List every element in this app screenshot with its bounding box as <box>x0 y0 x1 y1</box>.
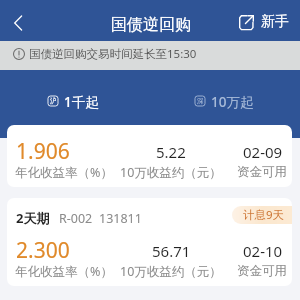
button[interactable]: Beginner guide <box>238 13 289 31</box>
staticText: 10万收益约（元） <box>120 263 220 280</box>
other: Beginner guide <box>238 14 255 31</box>
button[interactable]: 深 <box>195 92 254 110</box>
staticText: 新手 <box>261 13 289 31</box>
staticText: 资金可用 <box>237 263 287 279</box>
staticText: 5.22 <box>156 142 186 162</box>
staticText: 02-09 <box>243 142 283 162</box>
button[interactable]: 1.906 <box>7 125 292 187</box>
staticText: 10万起 <box>211 93 254 111</box>
staticText: 2.300 <box>16 236 70 265</box>
staticText: 年化收益率（%） <box>15 263 113 280</box>
staticText: 沪 <box>50 97 57 105</box>
staticText: 深 <box>197 97 204 105</box>
staticText: 02-10 <box>243 241 283 261</box>
staticText: 1千起 <box>64 93 99 111</box>
staticText: 2天期 <box>16 209 50 227</box>
staticText: 国债逆回购 <box>111 15 191 35</box>
staticText: 10万收益约（元） <box>120 164 220 181</box>
button[interactable]: 沪 <box>48 92 99 110</box>
staticText: 131811 <box>99 210 142 227</box>
button[interactable]: 计息9天 <box>232 206 292 224</box>
staticText: 56.71 <box>152 241 191 261</box>
staticText: 国债逆回购交易时间延长至15:30 <box>29 46 197 62</box>
staticText: 资金可用 <box>237 164 287 180</box>
staticText: 1.906 <box>16 137 70 166</box>
button[interactable]: Back <box>4 9 32 37</box>
staticText: 年化收益率（%） <box>15 164 113 181</box>
staticText: 计息9天 <box>243 207 285 223</box>
staticText: R-002 <box>59 210 93 227</box>
button[interactable]: 2天期 <box>7 198 292 286</box>
